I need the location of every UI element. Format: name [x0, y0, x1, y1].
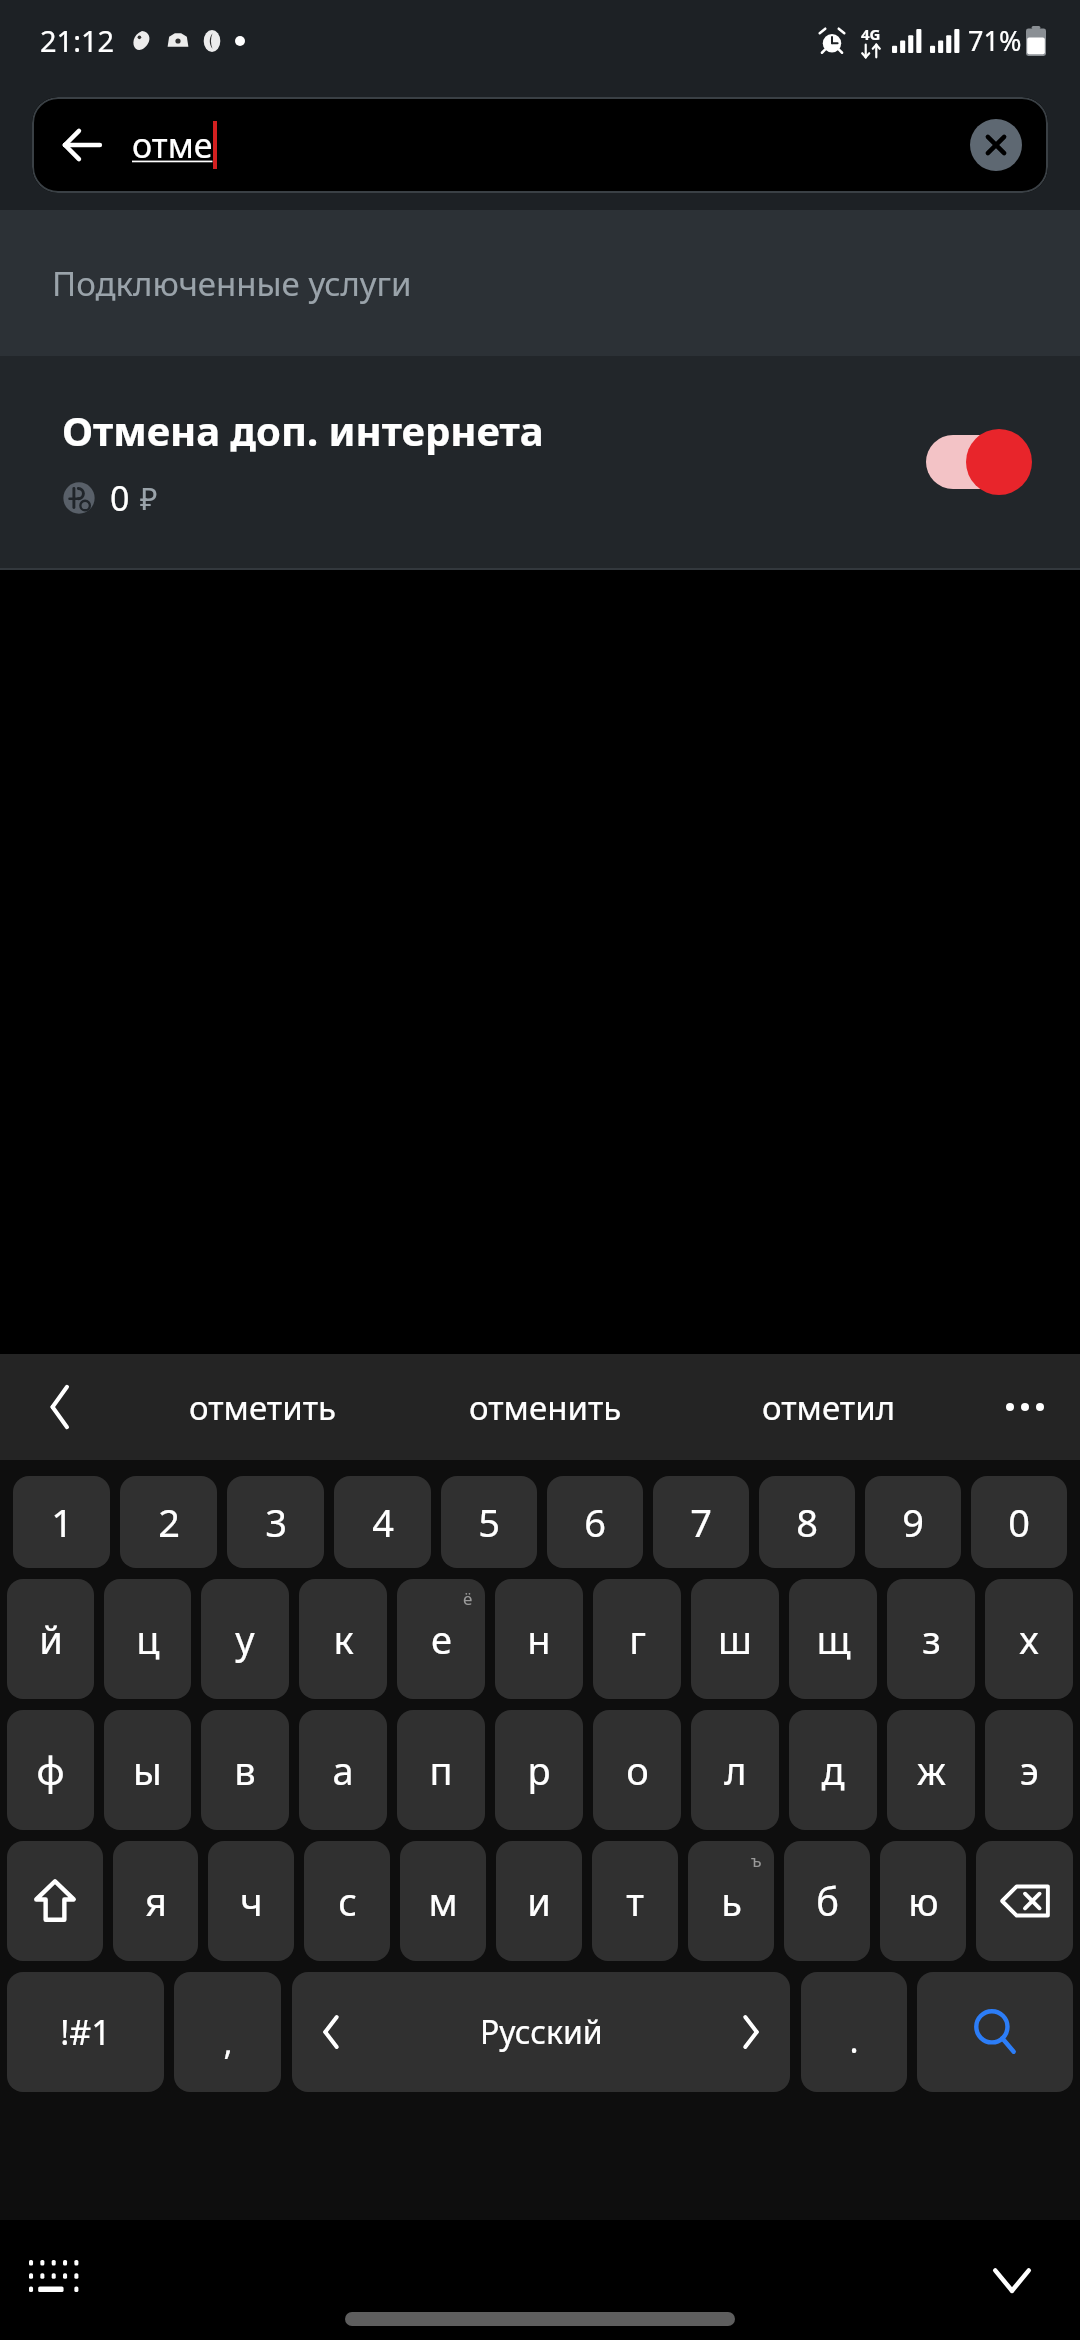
button[interactable]: Hide keyboard: [976, 2244, 1048, 2316]
button[interactable]: ,: [174, 1972, 281, 2092]
button[interactable]: ц: [104, 1579, 191, 1699]
button[interactable]: в: [201, 1710, 289, 1830]
button[interactable]: 9: [865, 1476, 961, 1568]
button[interactable]: 0: [971, 1476, 1067, 1568]
button[interactable]: р: [495, 1710, 583, 1830]
button[interactable]: отменить: [404, 1354, 687, 1460]
staticText: ц: [136, 1613, 160, 1665]
button[interactable]: .: [801, 1972, 907, 2092]
staticText: ю: [908, 1875, 939, 1927]
button[interactable]: 8: [759, 1476, 855, 1568]
staticText: ,: [223, 2019, 233, 2065]
button[interactable]: Отмена доп. интернета: [0, 356, 1080, 568]
staticText: 1: [51, 1496, 73, 1548]
button[interactable]: к: [299, 1579, 387, 1699]
button[interactable]: ч: [208, 1841, 294, 1961]
button[interactable]: ф: [7, 1710, 94, 1830]
button[interactable]: 3: [227, 1476, 324, 1568]
button[interactable]: м: [400, 1841, 486, 1961]
staticText: ё: [463, 1587, 473, 1610]
staticText: 4G: [861, 24, 881, 44]
button[interactable]: у: [201, 1579, 289, 1699]
button[interactable]: а: [299, 1710, 387, 1830]
staticText: 21:12: [40, 21, 115, 60]
staticText: !#1: [60, 2009, 111, 2055]
button[interactable]: !#1: [7, 1972, 164, 2092]
button[interactable]: отметить: [120, 1354, 404, 1460]
button[interactable]: н: [495, 1579, 583, 1699]
button[interactable]: Clear: [970, 119, 1022, 171]
button[interactable]: ы: [104, 1710, 191, 1830]
button[interactable]: отметил: [687, 1354, 970, 1460]
staticText: 6: [584, 1496, 606, 1548]
button[interactable]: з: [887, 1579, 975, 1699]
staticText: э: [1020, 1744, 1039, 1796]
staticText: отметить: [189, 1385, 336, 1430]
button[interactable]: е: [397, 1579, 485, 1699]
button[interactable]: Back: [46, 109, 118, 181]
staticText: о: [626, 1744, 649, 1796]
button[interactable]: 2: [120, 1476, 217, 1568]
staticText: 3: [265, 1496, 287, 1548]
button[interactable]: т: [592, 1841, 678, 1961]
button[interactable]: ь: [688, 1841, 774, 1961]
button[interactable]: 6: [547, 1476, 643, 1568]
button[interactable]: и: [496, 1841, 582, 1961]
staticText: г: [629, 1613, 646, 1665]
staticText: отметил: [762, 1385, 896, 1430]
button[interactable]: ю: [880, 1841, 966, 1961]
staticText: б: [816, 1875, 839, 1927]
button[interactable]: 1: [13, 1476, 110, 1568]
button[interactable]: Backspace: [976, 1841, 1073, 1961]
button[interactable]: х: [985, 1579, 1073, 1699]
button[interactable]: 5: [441, 1476, 537, 1568]
staticText: ы: [133, 1744, 162, 1796]
staticText: т: [626, 1875, 644, 1927]
staticText: ж: [917, 1744, 946, 1796]
button[interactable]: д: [789, 1710, 877, 1830]
staticText: к: [333, 1613, 354, 1665]
staticText: я: [145, 1875, 167, 1927]
staticText: 5: [478, 1496, 500, 1548]
staticText: и: [527, 1875, 551, 1927]
staticText: щ: [816, 1613, 851, 1665]
button[interactable]: й: [7, 1579, 94, 1699]
button[interactable]: ш: [691, 1579, 779, 1699]
staticText: р: [527, 1744, 551, 1796]
button[interactable]: 7: [653, 1476, 749, 1568]
button[interactable]: Shift: [7, 1841, 103, 1961]
staticText: с: [338, 1875, 357, 1927]
button[interactable]: я: [113, 1841, 198, 1961]
staticText: а: [332, 1744, 354, 1796]
staticText: в: [234, 1744, 256, 1796]
staticText: ь: [721, 1875, 742, 1927]
staticText: Отмена доп. интернета: [62, 403, 544, 457]
staticText: у: [235, 1613, 255, 1665]
staticText: л: [724, 1744, 747, 1796]
button[interactable]: 4: [334, 1476, 431, 1568]
button[interactable]: More options: [970, 1354, 1080, 1460]
staticText: Подключенные услуги: [52, 261, 412, 306]
button[interactable]: щ: [789, 1579, 877, 1699]
staticText: й: [39, 1613, 63, 1665]
button[interactable]: ж: [887, 1710, 975, 1830]
button[interactable]: п: [397, 1710, 485, 1830]
button[interactable]: б: [784, 1841, 870, 1961]
staticText: отменить: [469, 1385, 622, 1430]
staticText: ъ: [751, 1849, 762, 1872]
button[interactable]: о: [593, 1710, 681, 1830]
staticText: м: [428, 1875, 458, 1927]
button[interactable]: с: [304, 1841, 390, 1961]
button[interactable]: Toggle service: [922, 424, 1032, 500]
button[interactable]: Русский: [292, 1972, 790, 2092]
button[interactable]: Previous suggestions: [0, 1354, 120, 1460]
staticText: 71%: [968, 22, 1022, 59]
button[interactable]: Search: [917, 1972, 1073, 2092]
button[interactable]: Switch keyboard: [20, 2244, 92, 2316]
staticText: отме: [132, 122, 213, 168]
button[interactable]: э: [985, 1710, 1073, 1830]
button[interactable]: г: [593, 1579, 681, 1699]
staticText: ш: [718, 1613, 752, 1665]
staticText: 7: [690, 1496, 712, 1548]
button[interactable]: л: [691, 1710, 779, 1830]
